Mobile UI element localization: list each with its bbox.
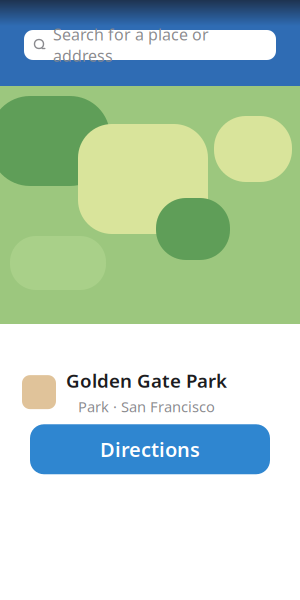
staticText: Park · San Francisco [78,397,215,416]
button[interactable]: Search for a place or address [24,30,276,60]
staticText: ▮▮▮ [261,3,282,18]
button[interactable]: Directions [30,424,270,474]
staticText: 9:41 [18,0,49,22]
staticText: Golden Gate Park [66,368,227,393]
staticText: Directions [100,436,200,463]
staticText: Search for a place or address [53,24,209,66]
